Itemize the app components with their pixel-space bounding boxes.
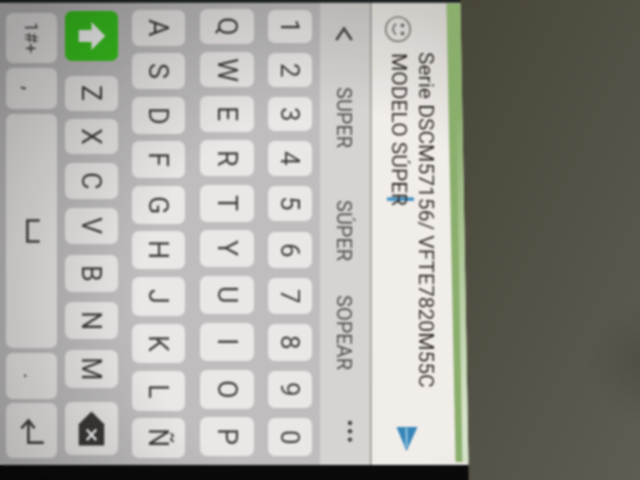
button[interactable]: Insert emoji — [377, 10, 417, 50]
button[interactable]: Send — [386, 418, 426, 462]
button[interactable]: F — [132, 141, 185, 178]
button[interactable]: 5 — [268, 186, 312, 221]
button[interactable]: 4 — [268, 141, 312, 176]
button[interactable]: 3 — [268, 97, 312, 131]
button[interactable]: C — [65, 163, 118, 199]
button[interactable]: N — [65, 302, 118, 339]
button[interactable]: 1#+ — [6, 13, 57, 63]
button[interactable]: Y — [200, 230, 254, 267]
button[interactable]: H — [132, 231, 185, 269]
button[interactable]: SUPER — [321, 58, 369, 177]
button[interactable]: J — [132, 277, 185, 316]
button[interactable]: Q — [200, 9, 254, 44]
button[interactable]: Z — [65, 76, 118, 111]
button[interactable]: R — [200, 140, 254, 176]
button[interactable]: Message text field — [373, 48, 449, 408]
button[interactable]: B — [65, 255, 118, 292]
button[interactable]: D — [132, 97, 185, 134]
button[interactable]: 6 — [268, 232, 312, 268]
button[interactable]: F — [132, 141, 185, 178]
button[interactable]: E — [200, 96, 254, 132]
button[interactable]: Shift — [65, 11, 118, 61]
button[interactable]: P — [200, 417, 254, 456]
button[interactable]: . — [6, 353, 57, 399]
button[interactable]: 8 — [268, 324, 312, 361]
button[interactable]: SOPEAR — [321, 284, 369, 380]
button[interactable]: C — [65, 163, 118, 199]
button[interactable]: N — [65, 302, 118, 339]
button[interactable]: More suggestions — [321, 400, 369, 460]
button[interactable]: More suggestions — [321, 400, 369, 460]
button[interactable]: K — [132, 324, 185, 363]
button[interactable]: 9 — [268, 371, 312, 408]
button[interactable]: O — [200, 370, 254, 409]
button[interactable]: Space — [6, 114, 57, 348]
button[interactable]: 8 — [268, 324, 312, 361]
button[interactable]: Ñ — [132, 418, 185, 458]
button[interactable]: SÚPER — [321, 177, 369, 284]
button[interactable]: X — [65, 119, 118, 154]
button[interactable]: 7 — [268, 278, 312, 314]
button[interactable]: B — [65, 255, 118, 292]
button[interactable]: Ñ — [132, 418, 185, 458]
button[interactable]: SÚPER — [321, 177, 369, 284]
button[interactable]: G — [132, 186, 185, 224]
button[interactable]: E — [200, 96, 254, 132]
button[interactable]: Enter — [6, 403, 57, 458]
button[interactable]: W — [200, 52, 254, 87]
button[interactable]: G — [132, 186, 185, 224]
button[interactable]: 2 — [268, 53, 312, 87]
button[interactable]: A — [132, 10, 185, 46]
button[interactable]: S — [132, 53, 185, 89]
button[interactable]: Q — [200, 9, 254, 44]
button[interactable]: P — [200, 417, 254, 456]
button[interactable]: 1 — [268, 10, 312, 43]
button[interactable]: J — [132, 277, 185, 316]
button[interactable]: Backspace — [65, 402, 118, 455]
button[interactable]: X — [65, 119, 118, 154]
button[interactable]: Backspace — [65, 402, 118, 455]
button[interactable]: SOPEAR — [321, 284, 369, 380]
button[interactable]: 9 — [268, 371, 312, 408]
button[interactable]: Y — [200, 230, 254, 267]
button[interactable]: 4 — [268, 141, 312, 176]
button[interactable]: I — [200, 323, 254, 361]
button[interactable]: U — [200, 276, 254, 314]
button[interactable]: V — [65, 208, 118, 244]
button[interactable]: L — [132, 371, 185, 411]
button[interactable]: D — [132, 97, 185, 134]
button[interactable]: R — [200, 140, 254, 176]
button[interactable]: . — [6, 353, 57, 399]
button[interactable]: I — [200, 323, 254, 361]
button[interactable]: K — [132, 324, 185, 363]
button[interactable]: V — [65, 208, 118, 244]
button[interactable]: Space — [6, 114, 57, 348]
button[interactable]: S — [132, 53, 185, 89]
button[interactable]: M — [65, 350, 118, 388]
button[interactable]: T — [200, 185, 254, 222]
button[interactable]: Send — [386, 418, 426, 462]
button[interactable]: 3 — [268, 97, 312, 131]
button[interactable]: 0 — [268, 418, 312, 456]
button[interactable]: Insert emoji — [377, 10, 417, 50]
button[interactable]: 5 — [268, 186, 312, 221]
button[interactable]: M — [65, 350, 118, 388]
button[interactable]: 2 — [268, 53, 312, 87]
button[interactable]: Shift — [65, 11, 118, 61]
button[interactable]: Previous suggestions — [321, 8, 369, 56]
button[interactable]: Previous suggestions — [321, 8, 369, 56]
button[interactable]: H — [132, 231, 185, 269]
button[interactable]: Enter — [6, 403, 57, 458]
button[interactable]: A — [132, 10, 185, 46]
button[interactable]: 1#+ — [6, 13, 57, 63]
button[interactable]: L — [132, 371, 185, 411]
button[interactable]: Message text field — [373, 48, 449, 408]
button[interactable]: W — [200, 52, 254, 87]
button[interactable]: SUPER — [321, 58, 369, 177]
button[interactable]: Z — [65, 76, 118, 111]
button[interactable]: T — [200, 185, 254, 222]
button[interactable]: 0 — [268, 418, 312, 456]
button[interactable]: 6 — [268, 232, 312, 268]
button[interactable]: , — [6, 68, 57, 109]
button[interactable]: O — [200, 370, 254, 409]
